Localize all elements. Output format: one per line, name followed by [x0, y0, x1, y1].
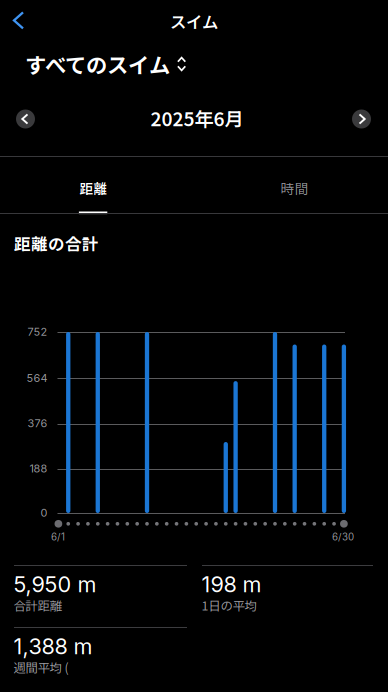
button[interactable]: 前の月	[7, 101, 43, 137]
staticText: 週間平均 (	[13, 658, 68, 676]
staticText: 距離	[79, 178, 107, 198]
staticText: 6/30	[332, 531, 354, 543]
staticText: すべてのスイム	[25, 49, 170, 79]
staticText: 2025年6月	[150, 104, 243, 132]
staticText: 距離の合計	[14, 231, 99, 255]
button[interactable]: 次の月	[343, 101, 379, 137]
button[interactable]: 時間	[194, 170, 388, 218]
staticText: 564	[26, 371, 47, 385]
staticText: 0	[40, 506, 47, 519]
staticText: スイム	[170, 9, 218, 33]
button[interactable]: すべてのスイム	[25, 47, 186, 81]
button[interactable]: 距離	[0, 170, 194, 218]
staticText: 合計距離	[13, 596, 61, 614]
staticText: 188	[29, 462, 47, 475]
staticText: 6/1	[51, 531, 65, 543]
staticText: 時間	[280, 178, 308, 198]
staticText: 1日の平均	[201, 596, 256, 614]
button[interactable]: 戻る	[0, 1, 38, 39]
staticText: 5,950 m	[13, 571, 96, 598]
staticText: 198 m	[201, 571, 261, 598]
staticText: 376	[27, 417, 47, 430]
staticText: 752	[27, 325, 47, 338]
staticText: 1,388 m	[13, 633, 92, 660]
